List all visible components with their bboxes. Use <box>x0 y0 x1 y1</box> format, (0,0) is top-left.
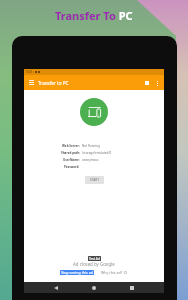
staticText: 9:41 <box>26 70 33 74</box>
staticText: Web Server: <box>62 144 80 148</box>
staticText: Password: <box>64 165 80 169</box>
button[interactable]: Why this ad? <box>100 269 128 276</box>
button[interactable]: START <box>85 176 104 184</box>
button[interactable]: Home <box>88 282 100 293</box>
staticText: Test Ad <box>89 257 100 261</box>
staticText: Why this ad? <box>101 270 123 275</box>
button[interactable]: Stop seeing this ad <box>60 270 94 275</box>
button[interactable]: Back <box>50 282 62 293</box>
button[interactable]: Share <box>142 78 151 87</box>
staticText: Not Running <box>82 144 100 148</box>
staticText: Transfer To PC <box>55 8 133 23</box>
staticText: UserName: <box>63 158 80 162</box>
button[interactable]: Open navigation menu <box>27 78 36 87</box>
staticText: Transfer to PC <box>38 80 69 86</box>
button[interactable]: Device <box>80 98 108 126</box>
staticText: START <box>90 178 100 182</box>
button[interactable]: Recents <box>126 282 138 293</box>
staticText: Stop seeing this ad <box>61 270 93 275</box>
staticText: anonymous <box>82 158 99 162</box>
staticText: Shared path: <box>61 151 80 155</box>
button[interactable]: More options <box>153 79 161 87</box>
staticText: Ad closed by Google <box>73 261 115 267</box>
staticText: /storage/emulated/0 <box>82 151 112 155</box>
